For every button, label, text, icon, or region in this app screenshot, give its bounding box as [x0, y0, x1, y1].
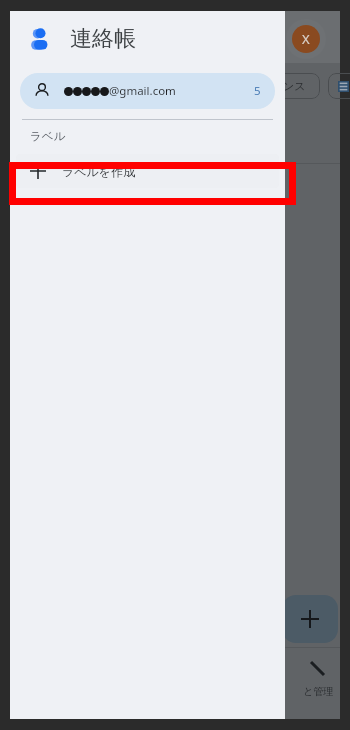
staticText: @gmail.com	[109, 83, 176, 99]
staticText: 5	[254, 83, 261, 99]
button[interactable]: ラベルを作成	[16, 154, 279, 188]
button[interactable]: Create contact	[282, 595, 338, 643]
button[interactable]: Account	[286, 19, 326, 59]
button[interactable]: @gmail.com	[20, 73, 275, 109]
staticText: ンス	[283, 79, 306, 93]
staticText: X	[302, 30, 310, 48]
staticText: ラベル	[30, 129, 66, 143]
button[interactable]: ンス	[268, 73, 320, 99]
staticText: 連絡帳	[70, 25, 136, 53]
staticText: ラベルを作成	[62, 164, 136, 179]
staticText: と管理	[303, 685, 334, 698]
button[interactable]: と管理	[286, 659, 350, 698]
button[interactable]: List	[328, 73, 350, 99]
